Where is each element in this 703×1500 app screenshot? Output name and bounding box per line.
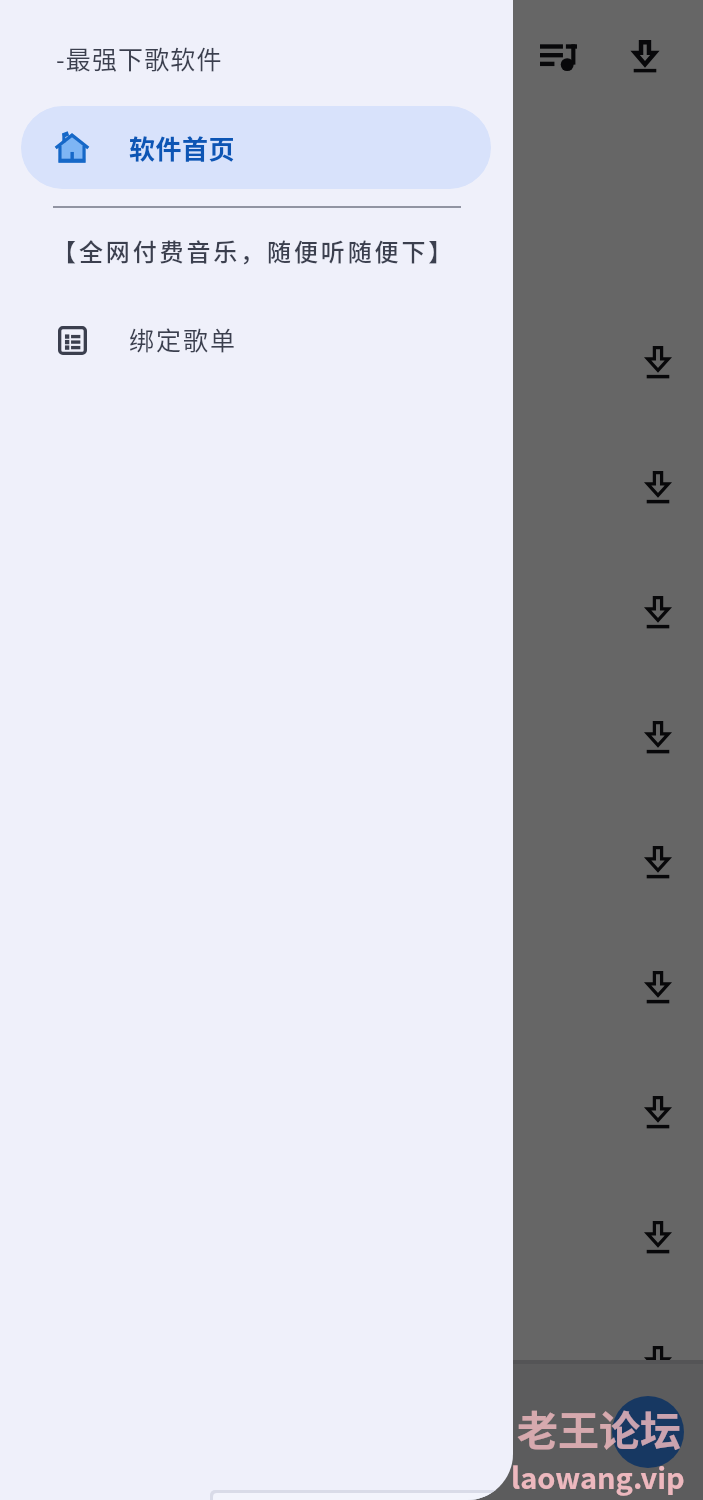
button[interactable]: Download song — [627, 581, 689, 643]
button[interactable]: Download song — [627, 956, 689, 1018]
button[interactable]: Download song — [0, 1299, 703, 1424]
button[interactable]: Download song — [627, 1206, 689, 1268]
button[interactable]: Download song — [627, 1331, 689, 1393]
button[interactable]: Download song — [0, 424, 703, 549]
button[interactable]: Download song — [0, 924, 703, 1049]
button[interactable]: Download song — [627, 706, 689, 768]
button[interactable]: 软件首页 — [21, 106, 491, 189]
button[interactable]: Download song — [0, 674, 703, 799]
button[interactable]: Playlist — [524, 22, 592, 90]
staticText: 绑定歌单 — [129, 321, 238, 357]
button[interactable]: Download song — [0, 799, 703, 924]
button[interactable]: Download song — [627, 1081, 689, 1143]
staticText: 软件首页 — [129, 129, 236, 167]
button[interactable]: Download song — [0, 299, 703, 424]
staticText: 【全网付费音乐，随便听随便下】 — [52, 233, 456, 268]
button[interactable]: Download song — [0, 549, 703, 674]
button[interactable]: Download all — [611, 22, 679, 90]
staticText: -最强下歌软件 — [56, 40, 223, 76]
button[interactable]: Download song — [627, 831, 689, 893]
button[interactable]: 绑定歌单 — [0, 307, 513, 367]
button[interactable]: Download song — [0, 1174, 703, 1299]
button[interactable]: Download song — [0, 1049, 703, 1174]
staticText: 老王论坛 — [517, 1398, 681, 1457]
button[interactable]: Download song — [627, 456, 689, 518]
button[interactable]: Download song — [627, 331, 689, 393]
staticText: laowang.vip — [511, 1455, 685, 1497]
